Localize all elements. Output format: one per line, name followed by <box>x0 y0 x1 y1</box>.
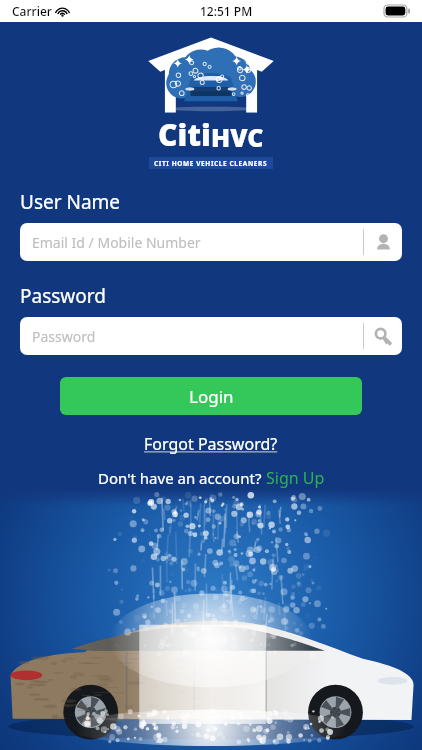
button[interactable]: Login <box>60 377 362 415</box>
button[interactable]: User name field <box>20 223 402 261</box>
staticText: 12:51 PM <box>200 3 253 19</box>
button[interactable]: Password field <box>20 317 402 355</box>
staticText: CITI HOME VEHICLE CLEANERS <box>154 159 268 168</box>
staticText: Citi <box>158 114 211 155</box>
button[interactable]: Sign Up <box>266 467 325 489</box>
staticText: Email Id / Mobile Number <box>32 233 363 252</box>
staticText: User Name <box>20 189 121 215</box>
staticText: Sign Up <box>266 467 325 489</box>
staticText: Password <box>20 283 106 309</box>
staticText: Don't have an account? <box>98 468 266 488</box>
staticText: HVC <box>211 120 264 154</box>
button[interactable]: Forgot Password? <box>138 431 284 457</box>
staticText: Login <box>189 385 234 408</box>
staticText: Password <box>32 327 363 346</box>
staticText: Carrier <box>12 3 52 19</box>
staticText: Forgot Password? <box>144 433 278 455</box>
